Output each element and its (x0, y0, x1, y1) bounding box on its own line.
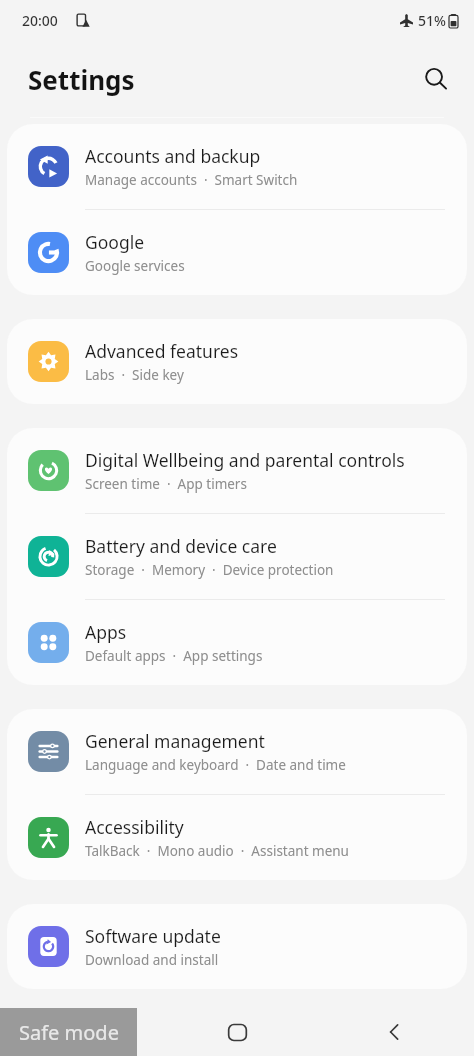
staticText: Battery and device care (85, 534, 277, 558)
staticText: Apps (85, 620, 127, 644)
button[interactable]: Google (7, 210, 467, 295)
staticText: Accounts and backup (85, 144, 261, 168)
button[interactable]: General management (7, 709, 467, 794)
button[interactable]: Accounts and backup (7, 124, 467, 209)
staticText: General management (85, 729, 265, 753)
staticText: Google services (85, 257, 185, 275)
staticText: Safe mode (19, 1019, 119, 1046)
staticText: Digital Wellbeing and parental controls (85, 448, 405, 472)
staticText: 51% (418, 11, 446, 30)
staticText: Language and keyboard · Date and time (85, 756, 346, 774)
staticText: Google (85, 230, 145, 254)
button[interactable]: Back (316, 1008, 474, 1056)
staticText: Screen time · App timers (85, 475, 247, 493)
button[interactable]: Digital Wellbeing and parental controls (7, 428, 467, 513)
staticText: TalkBack · Mono audio · Assistant menu (85, 842, 349, 860)
staticText: Storage · Memory · Device protection (85, 561, 334, 579)
staticText: Advanced features (85, 339, 239, 363)
staticText: Settings (28, 62, 135, 97)
button[interactable]: Accessibility (7, 795, 467, 880)
staticText: Download and install (85, 951, 219, 969)
button[interactable]: Advanced features (7, 319, 467, 404)
staticText: Labs · Side key (85, 366, 184, 384)
button[interactable]: Battery and device care (7, 514, 467, 599)
button[interactable]: Software update (7, 904, 467, 989)
button[interactable]: Search (412, 55, 460, 103)
button[interactable]: Home (158, 1008, 316, 1056)
button[interactable]: Recents (0, 1008, 158, 1056)
staticText: 20:00 (22, 11, 58, 30)
staticText: Accessibility (85, 815, 184, 839)
staticText: Manage accounts · Smart Switch (85, 171, 298, 189)
staticText: Software update (85, 924, 221, 948)
button[interactable]: Apps (7, 600, 467, 685)
staticText: Default apps · App settings (85, 647, 263, 665)
